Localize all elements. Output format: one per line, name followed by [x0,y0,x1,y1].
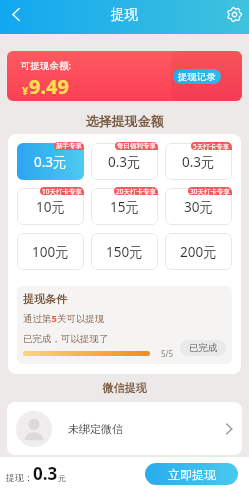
staticText: 0.3 [33,462,58,485]
staticText: 200元 [180,243,217,261]
staticText: 微信提现 [0,381,249,395]
staticText: 10天打卡专享 [42,187,82,195]
staticText: 提现记录 [178,71,216,83]
staticText: 选择提现金额 [0,113,249,129]
button[interactable]: 提现记录 [173,69,221,84]
button[interactable]: 200元 [165,233,232,270]
staticText: 提现 [111,6,138,23]
staticText: 20天打卡专享 [116,187,156,195]
button[interactable]: 立即提现 [145,463,238,485]
button[interactable]: 15元 [91,188,158,225]
staticText: 10元 [36,198,65,216]
button[interactable]: Settings [219,1,249,27]
staticText: 提现条件 [23,292,67,306]
staticText: 每日福利专享 [117,142,156,150]
staticText: 150元 [106,243,143,261]
staticText: 已完成 [189,342,218,354]
button[interactable]: 100元 [17,233,84,270]
staticText: 可提现余额: [21,59,72,72]
staticText: 0.3元 [182,153,215,171]
button[interactable]: 已完成 [180,340,226,356]
button[interactable]: 0.3元 [91,143,158,180]
staticText: 元 [58,473,66,483]
staticText: 0.3元 [108,153,141,171]
button[interactable]: 0.3元 [17,143,84,180]
button[interactable]: 未绑定微信 [7,402,242,455]
staticText: ¥ [22,83,29,98]
staticText: 0.3元 [34,153,67,171]
staticText: 5天打卡专享 [193,142,230,150]
staticText: 100元 [32,243,69,261]
staticText: 通过第5关可以提现 [23,312,105,325]
staticText: 新手专享 [56,142,82,150]
staticText: 已完成，可以提现了 [23,333,109,345]
staticText: 15元 [110,198,139,216]
button[interactable]: Back [1,1,31,27]
staticText: 30元 [184,198,213,216]
button[interactable]: 0.3元 [165,143,232,180]
staticText: 30天打卡专享 [190,187,230,195]
staticText: 5/5 [161,348,174,359]
button[interactable]: 30元 [165,188,232,225]
button[interactable]: 150元 [91,233,158,270]
staticText: 未绑定微信 [68,422,123,436]
staticText: 提现： [6,472,33,483]
staticText: 立即提现 [168,467,216,482]
staticText: 9.49 [29,73,69,100]
button[interactable]: 10元 [17,188,84,225]
